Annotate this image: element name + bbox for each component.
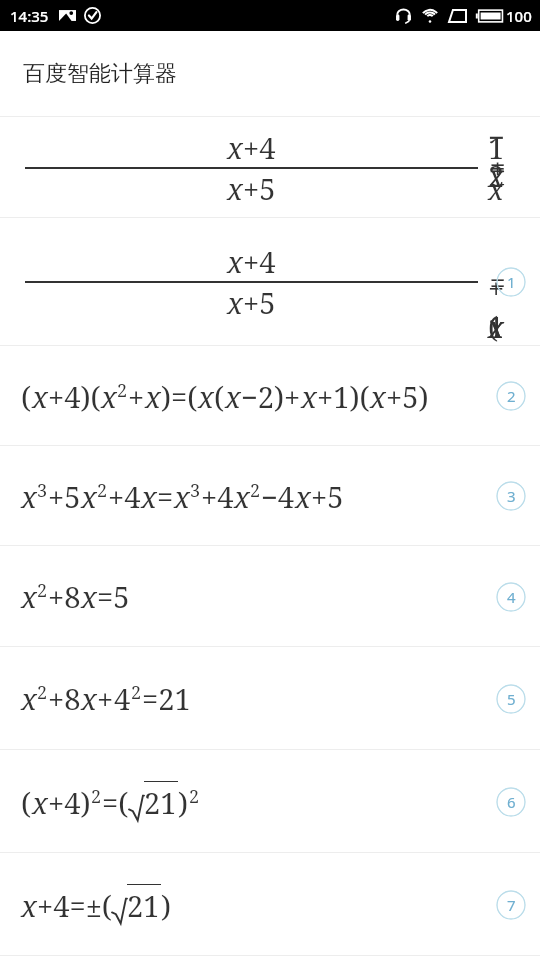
staticText: x [141, 477, 157, 516]
staticText: 2 [131, 680, 142, 705]
staticText: x [21, 679, 37, 718]
staticText: +8 [48, 577, 81, 616]
staticText: x [227, 128, 243, 167]
staticText: ) [161, 886, 172, 925]
staticText: +4 [108, 477, 141, 516]
button[interactable]: x [0, 218, 540, 346]
staticText: + [97, 679, 114, 718]
staticText: +5 [48, 477, 81, 516]
staticText: x [198, 377, 214, 416]
staticText: 2 [189, 784, 200, 809]
staticText: 2 [37, 680, 48, 705]
button[interactable]: x [0, 853, 540, 956]
staticText: x [145, 377, 161, 416]
button[interactable]: Step 5 [496, 684, 526, 714]
staticText: +4)( [48, 377, 101, 416]
staticText: 2 [91, 784, 102, 809]
staticText: x [225, 377, 241, 416]
staticText: 14:35 [10, 6, 49, 26]
staticText: 21 [127, 886, 160, 925]
staticText: + [128, 377, 145, 416]
staticText: x [32, 377, 48, 416]
staticText: 3 [37, 478, 48, 503]
staticText: 2 [97, 478, 108, 503]
staticText: x [81, 577, 97, 616]
staticText: 百度智能计算器 [23, 60, 177, 88]
staticText: ( [214, 377, 225, 416]
staticText: ) [178, 783, 189, 822]
staticText: −2)+ [241, 377, 301, 416]
staticText: 7 [507, 895, 516, 915]
staticText: =5 [97, 577, 130, 616]
staticText: 21 [144, 783, 177, 822]
staticText: −4 [261, 477, 295, 516]
staticText: x [21, 886, 37, 925]
button[interactable]: x [0, 647, 540, 750]
button[interactable]: x [0, 446, 540, 546]
staticText: x [227, 242, 243, 281]
staticText: +1)( [317, 377, 370, 416]
staticText: 1 [507, 272, 516, 292]
staticText: 4 [114, 679, 131, 718]
staticText: 2 [37, 578, 48, 603]
staticText: x [301, 377, 317, 416]
staticText: x [32, 783, 48, 822]
staticText: x [227, 283, 243, 322]
staticText: +4 [243, 242, 276, 281]
staticText: 100 [506, 6, 532, 26]
staticText: x [101, 377, 117, 416]
button[interactable]: Step 1 [496, 267, 526, 297]
staticText: x [295, 477, 311, 516]
staticText: 2 [507, 386, 516, 406]
button[interactable]: ( [0, 750, 540, 853]
staticText: x [81, 477, 97, 516]
staticText: = [157, 477, 174, 516]
staticText: x [370, 377, 386, 416]
staticText: x [21, 477, 37, 516]
staticText: +8 [48, 679, 81, 718]
staticText: x [227, 169, 243, 208]
staticText: +5 [243, 283, 276, 322]
staticText: x [174, 477, 190, 516]
staticText: 4 [507, 587, 516, 607]
staticText: +4 [201, 477, 234, 516]
button[interactable]: Step 7 [496, 890, 526, 920]
button[interactable]: Step 4 [496, 582, 526, 612]
button[interactable]: Step 6 [496, 787, 526, 817]
button[interactable]: x [0, 117, 540, 218]
staticText: =( [102, 783, 129, 822]
staticText: +4=±( [37, 886, 112, 925]
staticText: +5 [311, 477, 344, 516]
staticText: 6 [507, 792, 516, 812]
staticText: 5 [507, 689, 516, 709]
staticText: x [81, 679, 97, 718]
staticText: +4) [48, 783, 91, 822]
button[interactable]: x [0, 546, 540, 647]
staticText: ( [21, 377, 32, 416]
staticText: x [234, 477, 250, 516]
staticText: 2 [250, 478, 261, 503]
staticText: =21 [142, 679, 191, 718]
staticText: 3 [190, 478, 201, 503]
staticText: )=( [161, 377, 198, 416]
button[interactable]: Step 2 [496, 381, 526, 411]
staticText: x [21, 577, 37, 616]
staticText: +5 [243, 169, 276, 208]
button[interactable]: Step 3 [496, 481, 526, 511]
staticText: +5) [386, 377, 429, 416]
staticText: ( [21, 783, 32, 822]
staticText: +4 [243, 128, 276, 167]
button[interactable]: ( [0, 346, 540, 446]
staticText: 3 [507, 486, 516, 506]
staticText: 2 [117, 378, 128, 403]
